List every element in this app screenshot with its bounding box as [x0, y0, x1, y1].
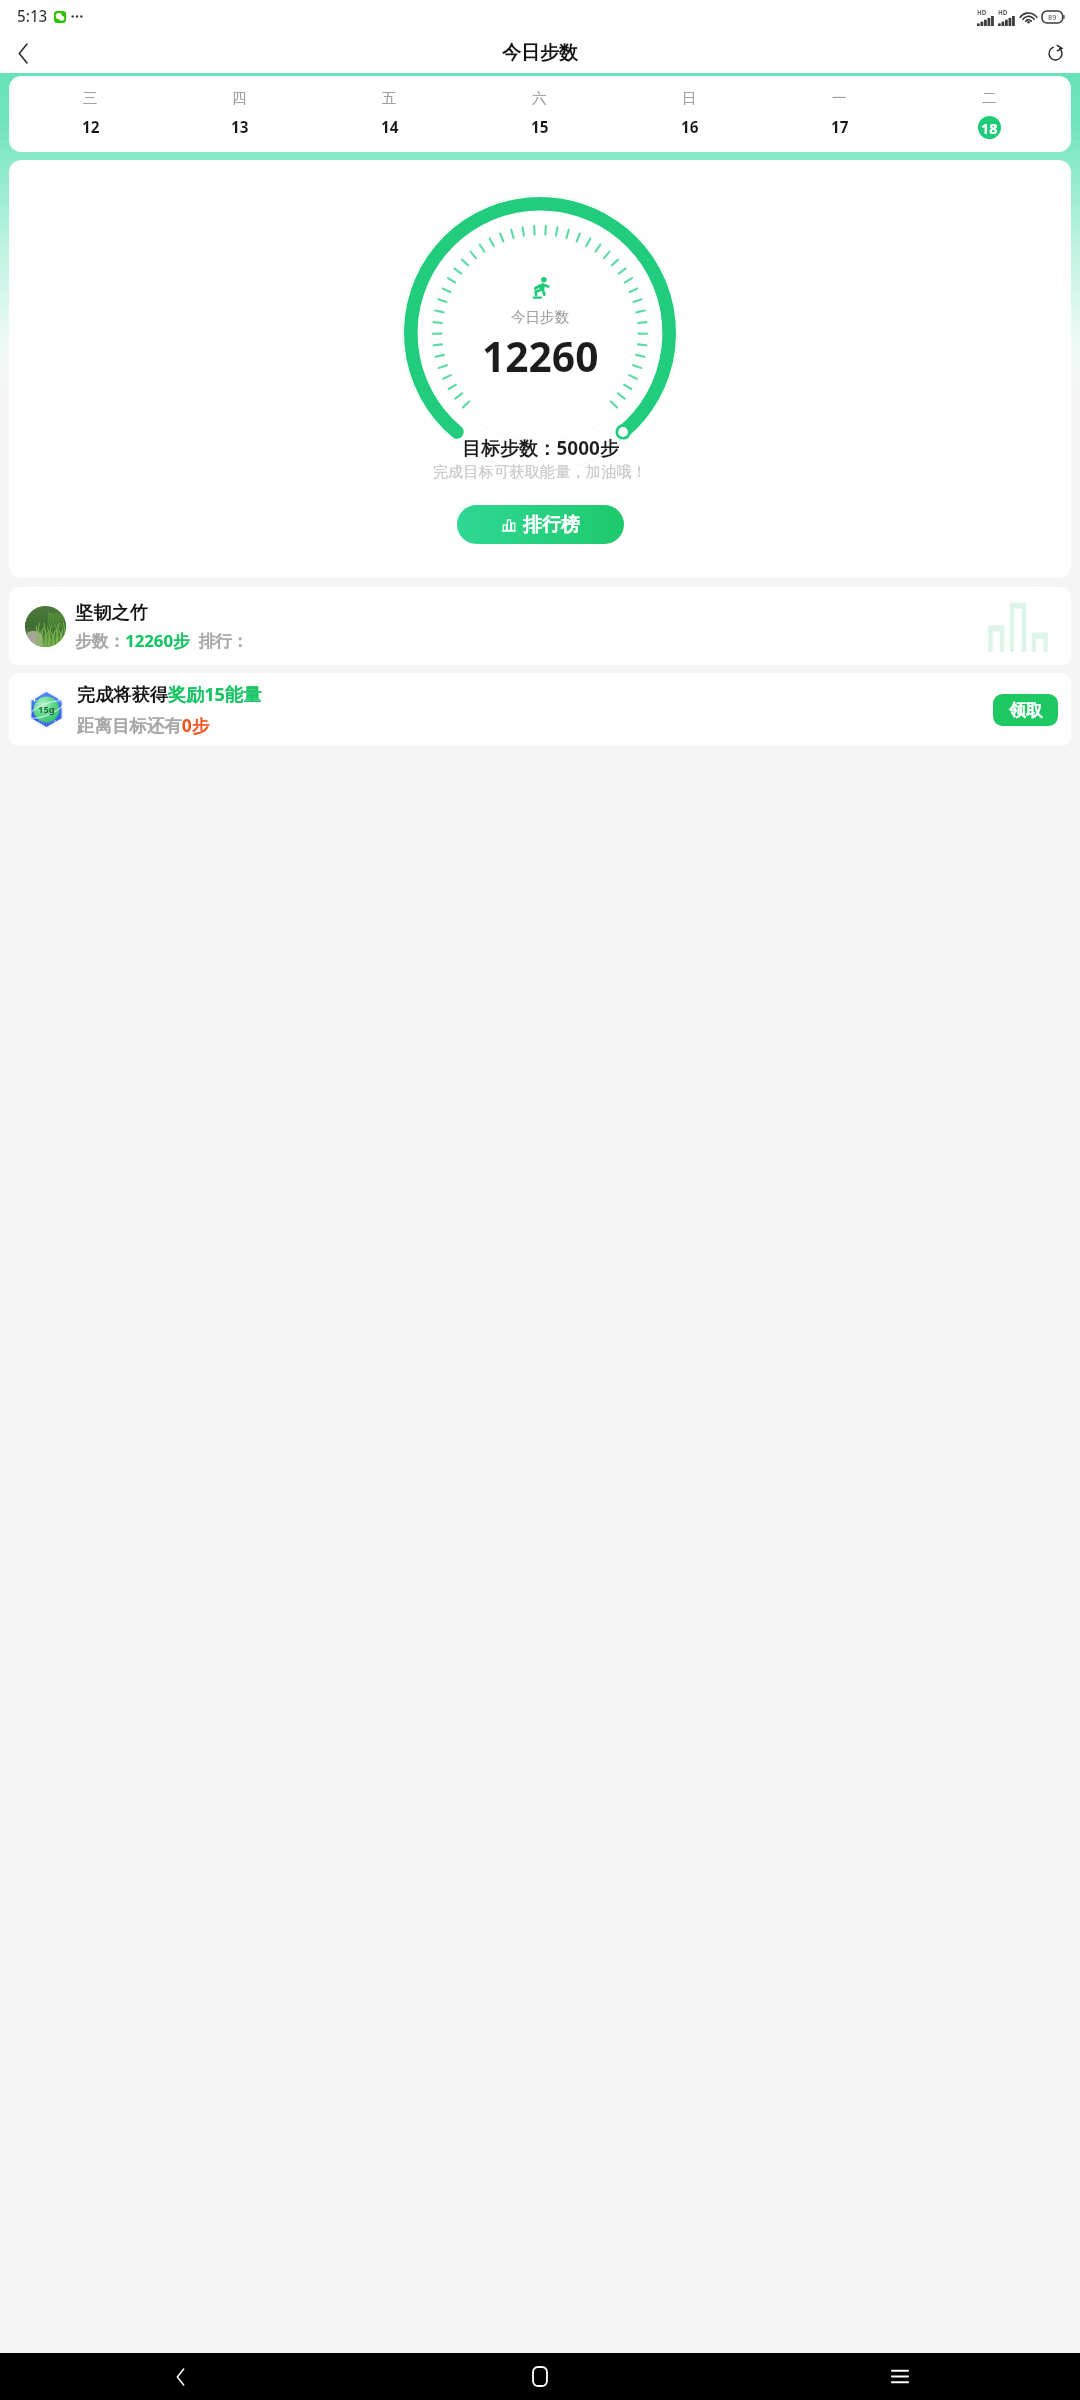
staticText: 今日步数 [511, 308, 570, 326]
staticText: 距离目标还有0步 [77, 713, 210, 737]
button[interactable]: 排行榜 [457, 505, 624, 544]
staticText: 12 [82, 117, 100, 138]
button[interactable]: Share [1040, 38, 1071, 69]
staticText: 完成目标可获取能量，加油哦！ [433, 462, 647, 481]
button[interactable]: 领取 [993, 694, 1058, 726]
staticText: 15g [38, 703, 55, 716]
button[interactable]: Home [360, 2353, 720, 2400]
staticText: 今日步数 [502, 41, 578, 65]
staticText: 15 [531, 117, 549, 138]
button[interactable]: Back [8, 38, 39, 69]
button[interactable]: Recent apps [720, 2353, 1080, 2400]
staticText: 17 [831, 117, 849, 138]
staticText: 18 [981, 118, 998, 138]
staticText: 5:13 [17, 6, 48, 27]
staticText: 步数：12260步 排行： [75, 629, 249, 652]
staticText: 14 [381, 117, 399, 138]
button[interactable]: 三 [9, 76, 1071, 152]
button[interactable]: 坚韧之竹 [9, 587, 1071, 665]
staticText: HD [998, 8, 1008, 16]
staticText: 12260 [482, 328, 599, 383]
staticText: 完成将获得奖励15能量 [77, 682, 262, 707]
staticText: 一 [832, 89, 847, 107]
staticText: HD [977, 8, 987, 16]
staticText: 日 [682, 89, 697, 107]
staticText: 四 [232, 89, 247, 107]
staticText: 坚韧之竹 [75, 601, 148, 624]
staticText: 三 [83, 89, 98, 107]
staticText: 89 [1048, 12, 1057, 22]
staticText: 16 [681, 117, 699, 138]
staticText: 13 [231, 117, 249, 138]
staticText: 五 [382, 89, 397, 107]
staticText: 排行榜 [523, 513, 580, 537]
staticText: 领取 [1009, 700, 1043, 721]
staticText: 二 [982, 89, 997, 107]
staticText: 六 [532, 89, 547, 107]
staticText: 目标步数：5000步 [462, 435, 619, 461]
button[interactable]: Back [0, 2353, 360, 2400]
